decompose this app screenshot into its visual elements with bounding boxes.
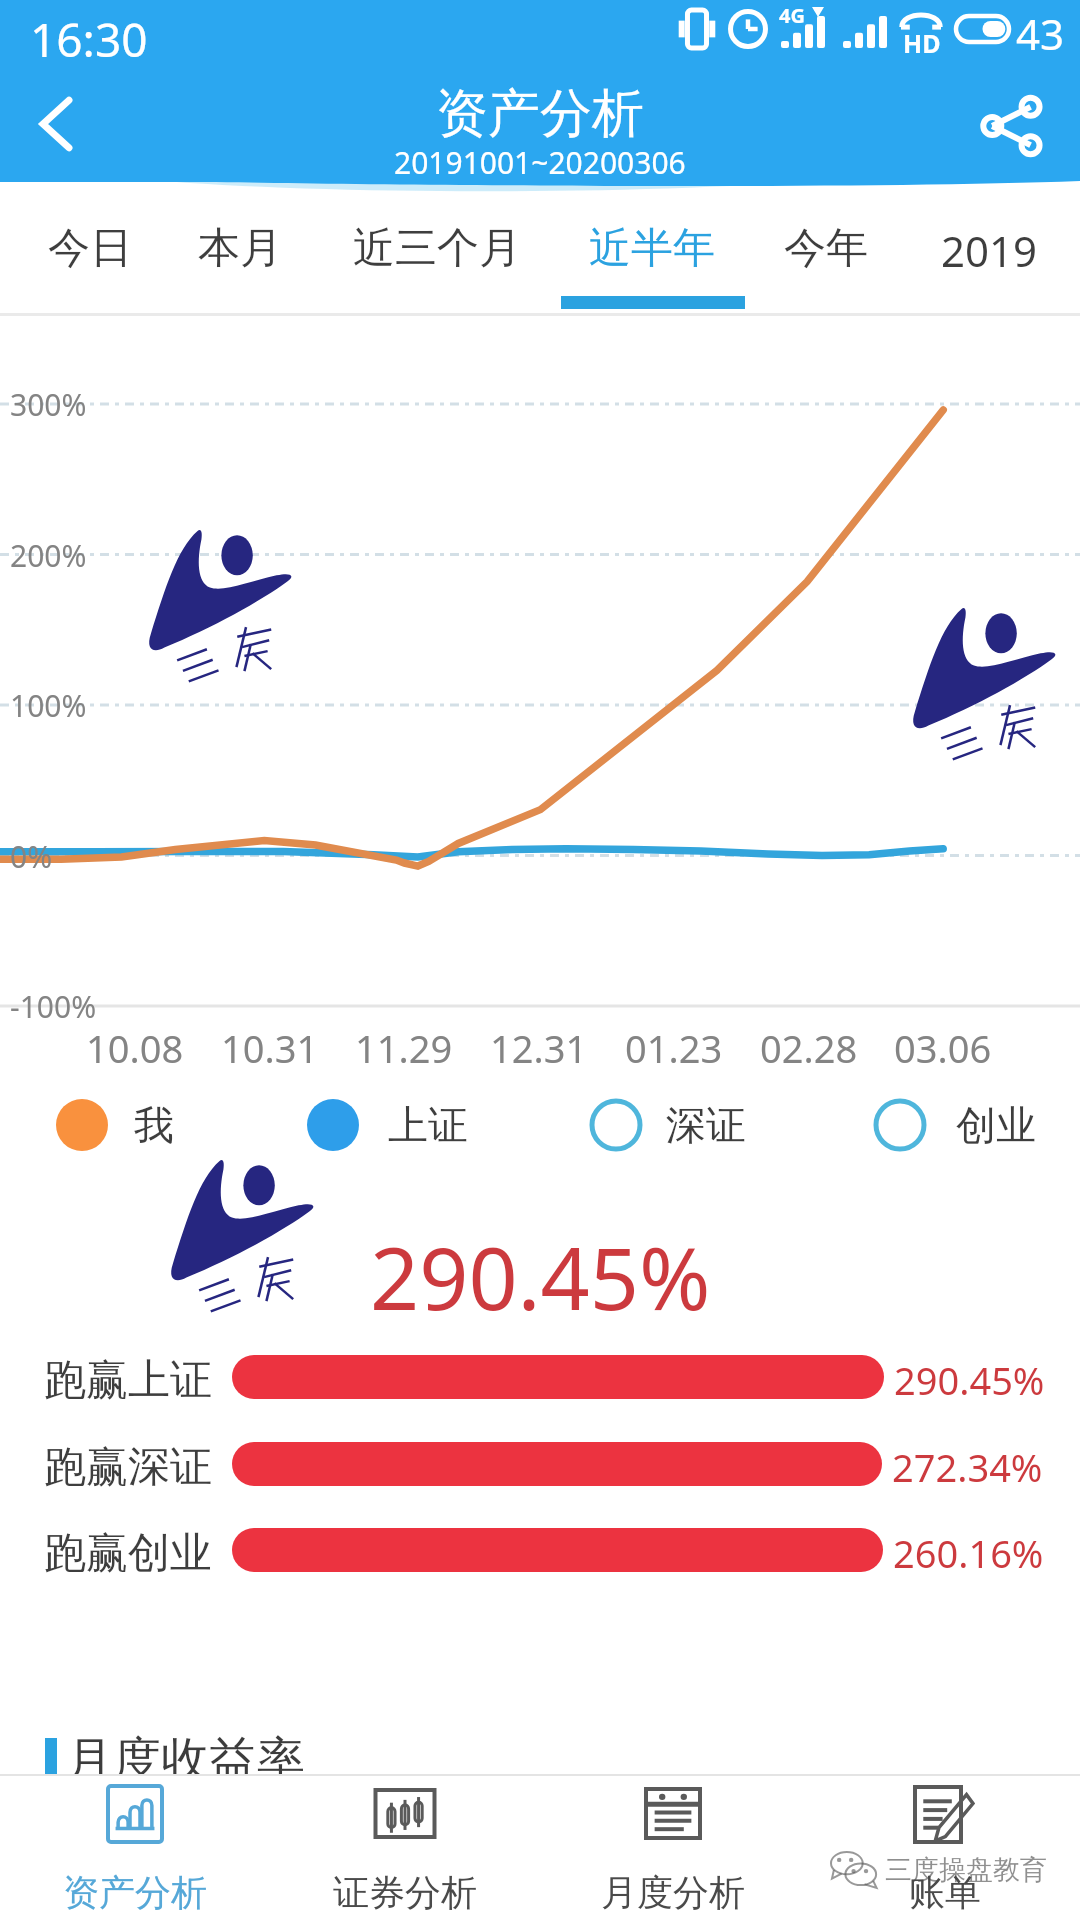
staticText: 月度分析: [601, 1870, 745, 1915]
staticText: 今年: [784, 222, 868, 275]
staticText: 300%: [10, 384, 87, 425]
button[interactable]: 资产分析: [10, 1776, 260, 1920]
staticText: 11.29: [355, 1022, 453, 1074]
button[interactable]: 跑赢创业: [0, 1527, 1080, 1573]
button[interactable]: 近半年: [573, 196, 731, 316]
button[interactable]: 跑赢深证: [0, 1441, 1080, 1487]
button[interactable]: Share: [968, 82, 1056, 170]
staticText: 资产分析: [436, 81, 644, 147]
staticText: 272.34%: [892, 1441, 1043, 1487]
staticText: 01.23: [625, 1022, 723, 1074]
staticText: 0%: [10, 836, 53, 877]
staticText: 260.16%: [893, 1527, 1044, 1573]
staticText: 跑赢创业: [44, 1527, 212, 1573]
staticText: 证券分析: [333, 1870, 477, 1915]
button[interactable]: 月度分析: [548, 1776, 798, 1920]
staticText: 02.28: [760, 1022, 858, 1074]
button[interactable]: 今日: [32, 196, 148, 316]
button[interactable]: 本月: [182, 196, 298, 316]
staticText: 16:30: [30, 8, 148, 71]
staticText: 290.45%: [370, 1218, 711, 1314]
staticText: 03.06: [894, 1022, 992, 1074]
staticText: 43: [1016, 5, 1065, 61]
staticText: 创业: [956, 1100, 1036, 1150]
staticText: -100%: [10, 986, 97, 1027]
staticText: 近三个月: [353, 222, 521, 275]
staticText: HD: [903, 26, 941, 60]
staticText: 三度操盘教育: [885, 1853, 1047, 1887]
staticText: 账单: [909, 1870, 981, 1915]
staticText: 290.45%: [894, 1354, 1045, 1400]
staticText: 10.08: [86, 1022, 184, 1074]
button[interactable]: 近三个月: [337, 196, 537, 316]
staticText: 近半年: [589, 222, 715, 275]
staticText: 深证: [666, 1100, 746, 1150]
button[interactable]: Back: [12, 80, 100, 168]
staticText: 上证: [388, 1100, 468, 1150]
button[interactable]: 我: [48, 1090, 174, 1160]
staticText: 跑赢深证: [44, 1441, 212, 1487]
button[interactable]: 今年: [768, 196, 884, 316]
staticText: 4G: [779, 2, 805, 29]
staticText: 跑赢上证: [44, 1354, 212, 1400]
staticText: 100%: [10, 685, 87, 726]
button[interactable]: 证券分析: [280, 1776, 530, 1920]
button[interactable]: 上证: [299, 1090, 468, 1160]
button[interactable]: 账单: [820, 1776, 1070, 1920]
button[interactable]: 2019: [889, 196, 1080, 316]
staticText: 今日: [48, 222, 132, 275]
staticText: 本月: [198, 222, 282, 275]
staticText: 200%: [10, 535, 87, 576]
staticText: 2019: [941, 222, 1038, 279]
staticText: 10.31: [221, 1022, 319, 1074]
staticText: 月度收益率: [65, 1730, 305, 1790]
staticText: 资产分析: [63, 1870, 207, 1915]
staticText: 12.31: [490, 1022, 588, 1074]
staticText: 20191001~20200306: [394, 142, 686, 183]
staticText: 我: [134, 1100, 174, 1150]
button[interactable]: 创业: [866, 1090, 1036, 1160]
button[interactable]: 深证: [582, 1090, 746, 1160]
button[interactable]: 跑赢上证: [0, 1354, 1080, 1400]
